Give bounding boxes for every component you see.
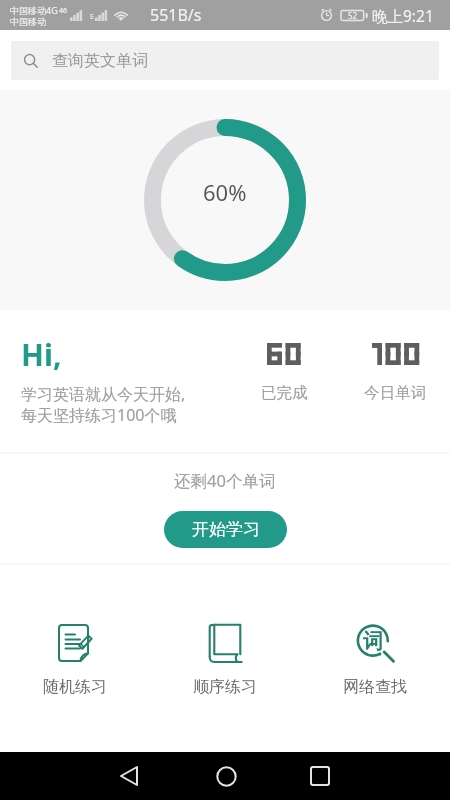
staticText: 已完成 [261, 383, 308, 403]
button[interactable]: 开始学习 [164, 511, 287, 548]
staticText: 随机练习 [43, 677, 107, 697]
button[interactable]: 随机练习 [0, 565, 150, 705]
staticText: 开始学习 [192, 519, 260, 540]
staticText: 网络查找 [343, 677, 407, 697]
staticText: 551B/s [150, 4, 202, 26]
staticText: 还剩40个单词 [174, 469, 276, 492]
button[interactable]: 顺序练习 [150, 565, 300, 705]
button[interactable]: 已完成 [224, 343, 344, 403]
staticText: 顺序练习 [193, 677, 257, 697]
staticText: 学习英语就从今天开始, 每天坚持练习100个哦 [21, 383, 186, 426]
staticText: 60% [203, 177, 247, 207]
staticText: Hi, [21, 334, 62, 375]
staticText: 中国移动 [10, 16, 46, 27]
staticText: 46 [59, 6, 68, 16]
staticText: 中国移动4G [10, 4, 58, 16]
button[interactable]: Home [202, 752, 250, 800]
staticText: 52 [348, 10, 358, 21]
button[interactable]: 今日单词 [335, 343, 450, 403]
button[interactable]: Back [105, 752, 153, 800]
staticText: E [90, 11, 95, 21]
staticText: 查询英文单词 [52, 51, 148, 71]
button[interactable]: Recents [296, 752, 344, 800]
staticText: 词 [363, 629, 383, 654]
button[interactable]: 词 [300, 565, 450, 705]
button[interactable]: 查询英文单词 [11, 41, 439, 80]
staticText: 晚上9:21 [372, 5, 434, 26]
staticText: 今日单词 [364, 383, 426, 403]
